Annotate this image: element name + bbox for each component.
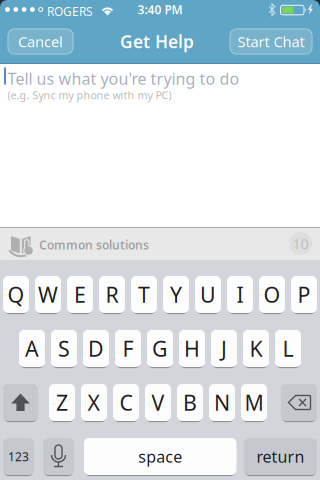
- button[interactable]: Q: [3, 276, 29, 313]
- staticText: G: [152, 334, 168, 363]
- staticText: C: [119, 388, 132, 417]
- staticText: Start Chat: [237, 32, 304, 51]
- staticText: L: [282, 334, 293, 363]
- button[interactable]: M: [241, 384, 267, 421]
- button[interactable]: Y: [163, 276, 189, 313]
- staticText: Z: [56, 388, 68, 417]
- staticText: I: [236, 280, 243, 309]
- button[interactable]: R: [99, 276, 125, 313]
- staticText: H: [184, 334, 200, 363]
- staticText: N: [214, 388, 230, 417]
- button[interactable]: A: [19, 330, 45, 367]
- button[interactable]: Common solutions: [0, 227, 320, 260]
- button[interactable]: H: [179, 330, 205, 367]
- button[interactable]: space: [84, 438, 236, 475]
- staticText: W: [38, 280, 58, 309]
- staticText: S: [58, 334, 70, 363]
- staticText: 10: [292, 234, 308, 253]
- button[interactable]: E: [67, 276, 93, 313]
- staticText: return: [256, 446, 304, 467]
- staticText: Y: [170, 280, 182, 309]
- staticText: 123: [8, 448, 29, 464]
- staticText: D: [88, 334, 104, 363]
- button[interactable]: O: [259, 276, 285, 313]
- button[interactable]: Start Chat: [230, 29, 312, 54]
- staticText: Q: [7, 280, 24, 309]
- button[interactable]: T: [131, 276, 157, 313]
- button[interactable]: N: [209, 384, 235, 421]
- button[interactable]: L: [275, 330, 301, 367]
- button[interactable]: X: [81, 384, 107, 421]
- button[interactable]: V: [145, 384, 171, 421]
- staticText: ROGERS: [47, 3, 93, 19]
- button[interactable]: return: [244, 438, 317, 475]
- button[interactable]: P: [291, 276, 317, 313]
- staticText: F: [122, 334, 133, 363]
- button[interactable]: K: [243, 330, 269, 367]
- staticText: T: [138, 280, 150, 309]
- staticText: U: [200, 280, 216, 309]
- button[interactable]: 123: [3, 438, 34, 475]
- button[interactable]: J: [211, 330, 237, 367]
- staticText: Tell us what you're trying to do: [7, 68, 239, 89]
- staticText: B: [183, 388, 197, 417]
- staticText: V: [151, 388, 164, 417]
- staticText: space: [138, 446, 182, 467]
- button[interactable]: B: [177, 384, 203, 421]
- staticText: E: [74, 280, 86, 309]
- button[interactable]: Delete: [281, 384, 317, 421]
- staticText: P: [297, 280, 310, 309]
- button[interactable]: I: [227, 276, 253, 313]
- staticText: Common solutions: [39, 237, 149, 253]
- button[interactable]: F: [115, 330, 141, 367]
- staticText: M: [244, 388, 263, 417]
- button[interactable]: Dictate: [43, 438, 74, 475]
- staticText: A: [25, 334, 39, 363]
- staticText: K: [249, 334, 262, 363]
- button[interactable]: Shift: [3, 384, 38, 421]
- staticText: J: [221, 334, 227, 363]
- staticText: X: [87, 388, 100, 417]
- button[interactable]: G: [147, 330, 173, 367]
- staticText: 3:40 PM: [137, 1, 182, 17]
- button[interactable]: D: [83, 330, 109, 367]
- staticText: Cancel: [18, 32, 63, 51]
- button[interactable]: U: [195, 276, 221, 313]
- staticText: R: [105, 280, 118, 309]
- staticText: (e.g. Sync my phone with my PC): [7, 88, 171, 102]
- button[interactable]: W: [35, 276, 61, 313]
- button[interactable]: C: [113, 384, 139, 421]
- staticText: O: [263, 280, 280, 309]
- button[interactable]: S: [51, 330, 77, 367]
- button[interactable]: Cancel: [8, 29, 73, 54]
- staticText: Get Help: [120, 30, 194, 53]
- button[interactable]: Z: [49, 384, 75, 421]
